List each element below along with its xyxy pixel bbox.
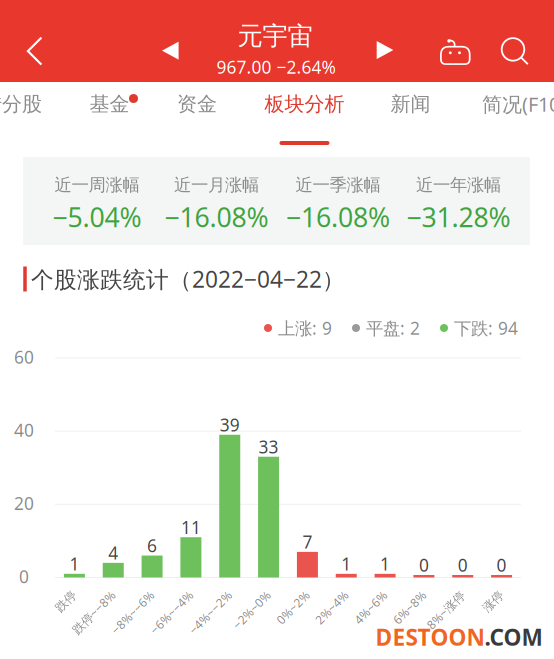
staticText: 11 <box>181 516 201 539</box>
staticText: 6%~8% <box>383 585 424 601</box>
staticText: −16.08% <box>164 199 268 235</box>
staticText: 跌停~−8% <box>58 585 113 601</box>
staticText: 0 <box>497 553 507 576</box>
button[interactable]: 新闻 <box>382 82 438 126</box>
staticText: 33 <box>259 435 279 458</box>
staticText: 1 <box>341 552 351 575</box>
staticText: 资金 <box>177 92 217 116</box>
staticText: −5.04% <box>52 199 141 235</box>
staticText: 上涨: 9 <box>278 316 332 339</box>
staticText: 4 <box>108 541 118 564</box>
staticText: 0 <box>419 553 429 576</box>
staticText: 近一季涨幅 <box>295 174 380 196</box>
staticText: −8%~−6% <box>97 585 152 601</box>
staticText: 个股涨跌统计（2022−04−22） <box>31 264 345 294</box>
staticText: −6%~−4% <box>136 585 191 601</box>
button[interactable]: Back <box>4 13 66 89</box>
staticText: 近一月涨幅 <box>174 174 259 196</box>
staticText: 简况(F10) <box>482 91 554 117</box>
staticText: 2%~4% <box>305 585 346 601</box>
staticText: .COM <box>484 622 542 652</box>
staticText: 7 <box>302 530 312 553</box>
staticText: 基金 <box>89 92 129 116</box>
staticText: 送转分股 <box>0 92 42 116</box>
button[interactable]: Previous <box>146 23 194 79</box>
staticText: 0%~2% <box>266 585 307 601</box>
staticText: −31.28% <box>406 199 510 235</box>
staticText: 0 <box>19 565 29 588</box>
staticText: 60 <box>14 345 34 368</box>
staticText: 6 <box>147 534 157 557</box>
staticText: 967.00 −2.64% <box>216 55 335 78</box>
staticText: 1 <box>69 552 79 575</box>
staticText: 近一年涨幅 <box>416 174 501 196</box>
staticText: 8%~涨停 <box>415 585 463 601</box>
button[interactable]: 资金 <box>169 82 225 126</box>
staticText: 20 <box>14 492 34 515</box>
staticText: 4%~6% <box>344 585 385 601</box>
staticText: 0 <box>458 553 468 576</box>
button[interactable]: 简况(F10) <box>474 82 554 126</box>
staticText: 涨停 <box>478 586 502 600</box>
staticText: −16.08% <box>286 199 390 235</box>
button[interactable]: Next <box>361 22 409 78</box>
staticText: 39 <box>220 413 240 436</box>
button[interactable]: 基金 <box>81 82 137 126</box>
staticText: 下跌: 94 <box>454 316 518 339</box>
button[interactable]: 板块分析 <box>256 82 352 126</box>
staticText: 元宇宙 <box>237 20 312 51</box>
staticText: 平盘: 2 <box>366 316 420 339</box>
staticText: DESTOON <box>375 622 484 652</box>
staticText: 跌停 <box>50 586 74 600</box>
staticText: 新闻 <box>390 92 430 116</box>
button[interactable]: Search <box>488 20 542 82</box>
staticText: −4%~−2% <box>175 585 230 601</box>
staticText: 40 <box>14 419 34 442</box>
staticText: 近一周涨幅 <box>54 174 139 196</box>
staticText: 板块分析 <box>264 92 344 116</box>
button[interactable]: 送转分股 <box>0 82 50 126</box>
staticText: −2%~0% <box>221 585 269 601</box>
button[interactable]: Assistant <box>427 21 483 83</box>
staticText: 1 <box>380 552 390 575</box>
